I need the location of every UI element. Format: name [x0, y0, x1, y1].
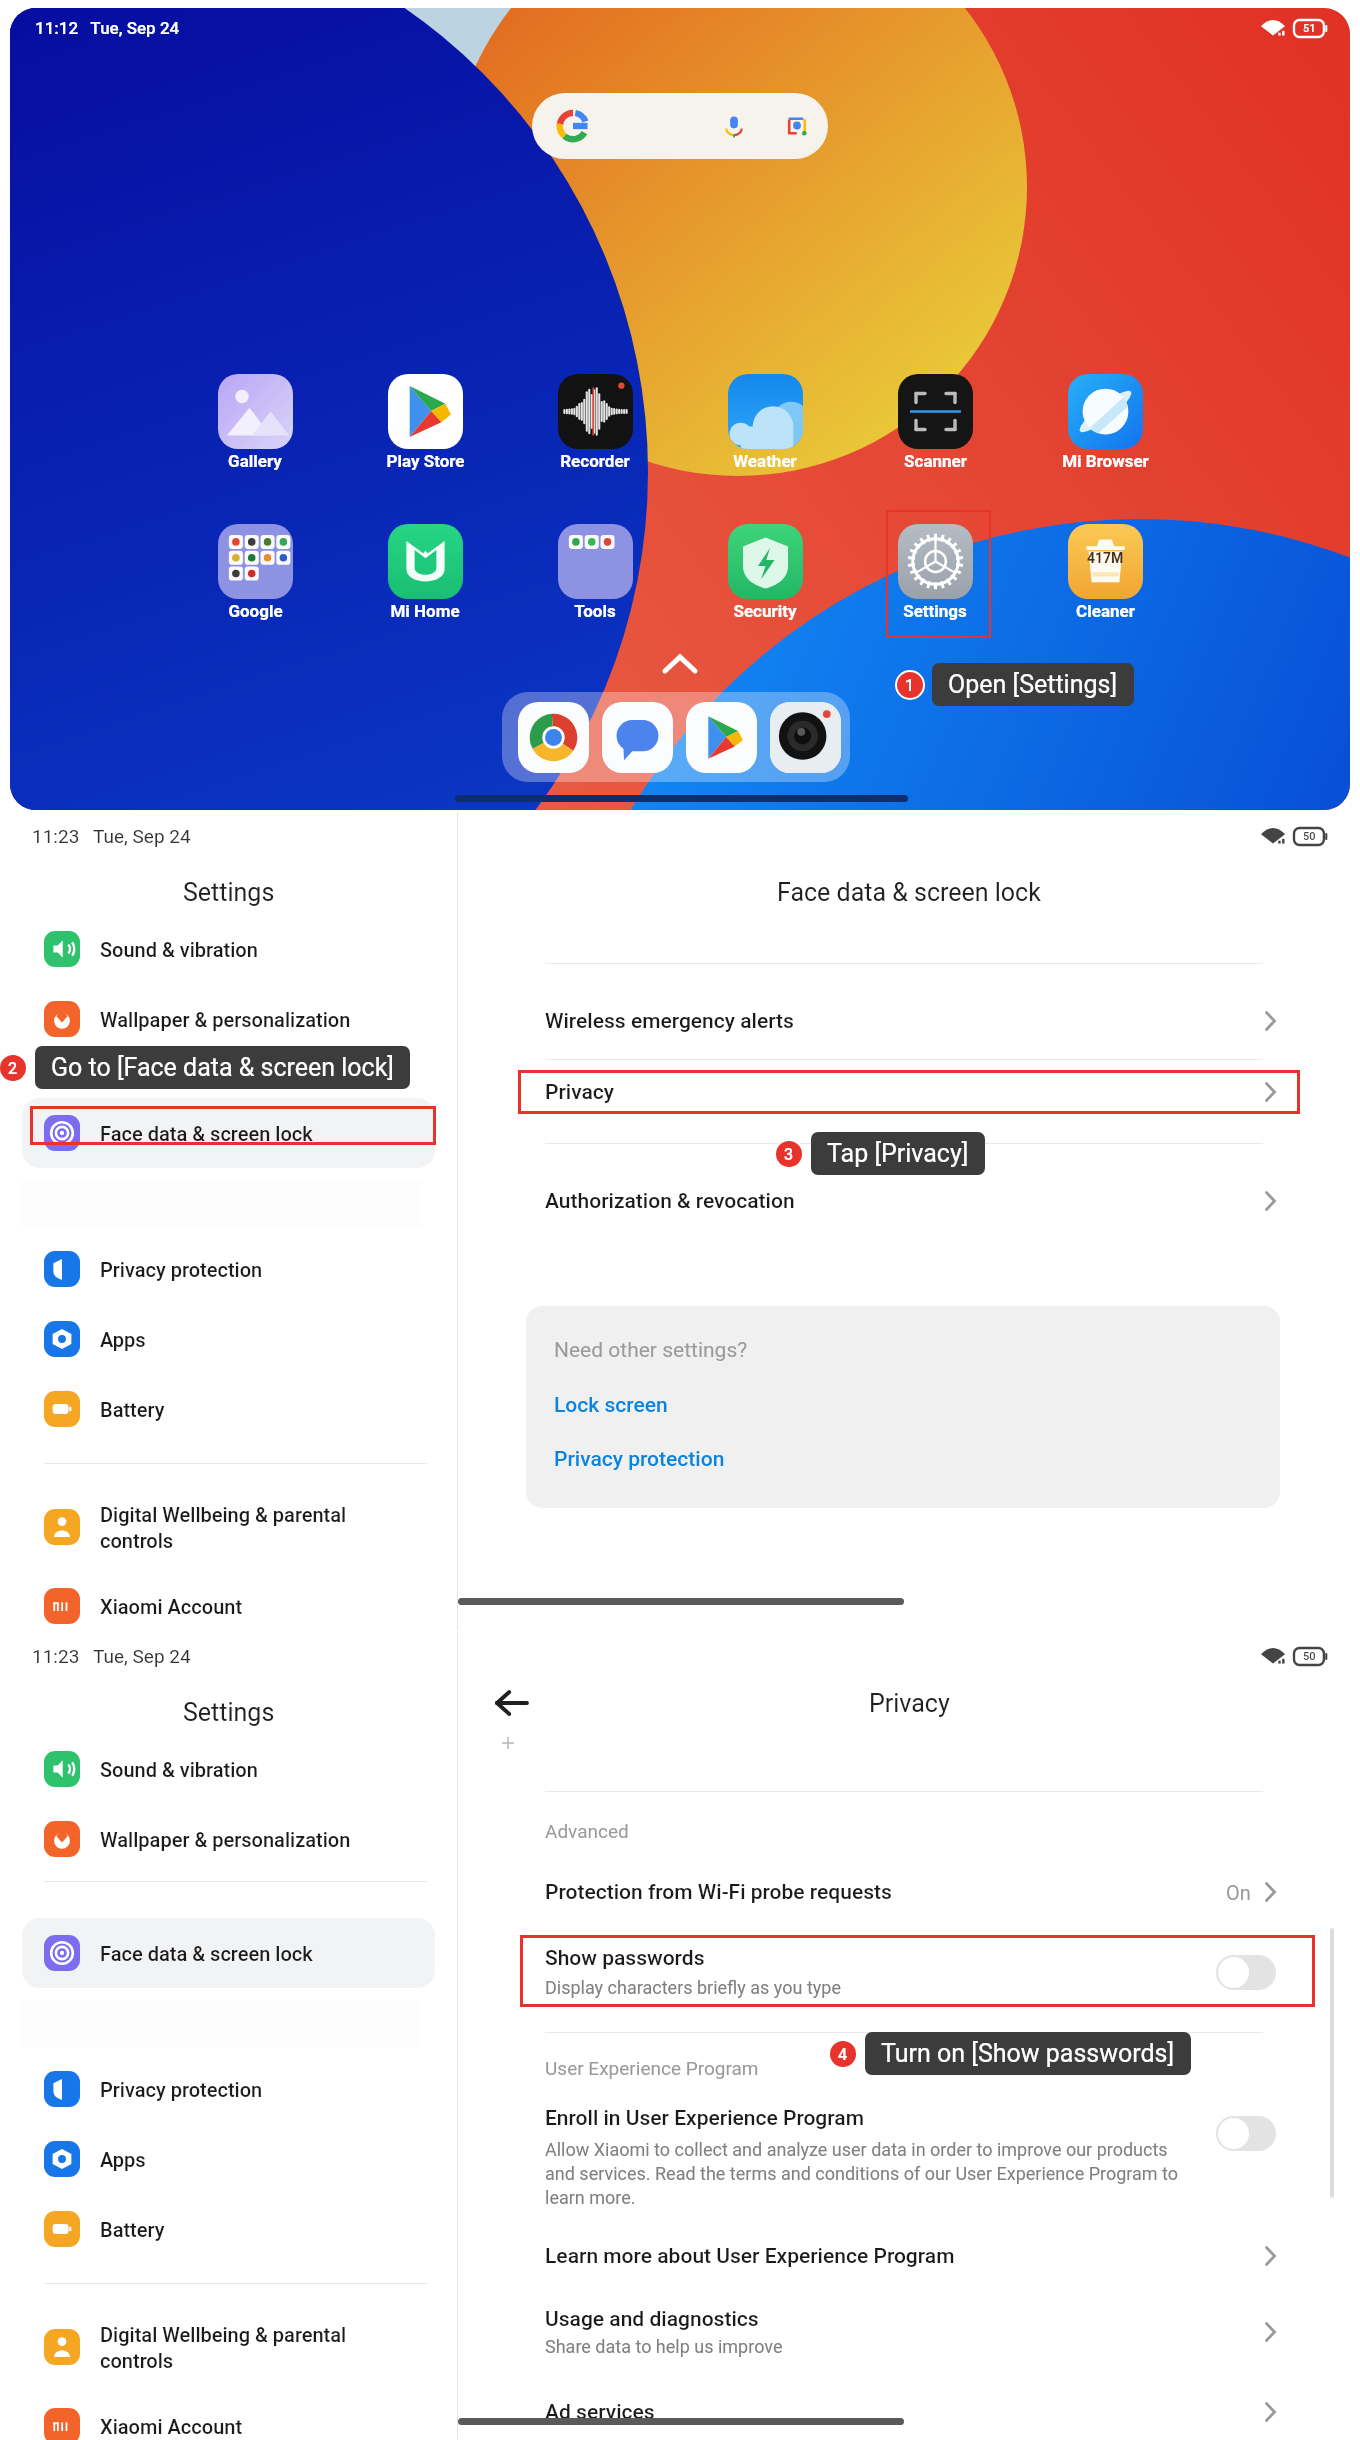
- button[interactable]: Usage and diagnostics: [545, 2297, 1276, 2367]
- staticText: Mi Home: [390, 601, 460, 621]
- button[interactable]: Privacy protection: [554, 1447, 725, 1472]
- staticText: Protection from Wi-Fi probe requests: [545, 1880, 892, 1905]
- staticText: Face data & screen lock: [100, 1942, 313, 1965]
- button[interactable]: Protection from Wi-Fi probe requests: [545, 1857, 1276, 1927]
- button[interactable]: 417M: [1045, 524, 1165, 621]
- staticText: Digital Wellbeing & parental controls: [100, 1503, 347, 1552]
- button[interactable]: Face data & screen lock: [22, 1918, 435, 1988]
- staticText: Wallpaper & personalization: [100, 1828, 351, 1851]
- button[interactable]: Battery: [44, 1374, 457, 1444]
- button[interactable]: Apps: [44, 1304, 457, 1374]
- staticText: On: [1226, 1881, 1251, 1904]
- staticText: 11:23 Tue, Sep 24: [32, 1645, 191, 1667]
- button[interactable]: chrome: [518, 702, 589, 773]
- button[interactable]: Toggle: [1216, 1955, 1276, 1990]
- button[interactable]: Sound & vibration: [44, 1734, 457, 1804]
- staticText: Digital Wellbeing & parental controls: [100, 2323, 347, 2372]
- staticText: Cleaner: [1076, 601, 1135, 621]
- staticText: Google: [228, 601, 283, 621]
- staticText: Sound & vibration: [100, 938, 258, 961]
- staticText: Play Store: [386, 451, 465, 471]
- staticText: Privacy protection: [100, 2078, 263, 2101]
- staticText: Privacy protection: [100, 1258, 263, 1281]
- button[interactable]: Learn more about User Experience Program: [545, 2221, 1276, 2291]
- button[interactable]: Wallpaper & personalization: [44, 1804, 457, 1874]
- button[interactable]: Privacy protection: [44, 1234, 457, 1304]
- staticText: Face data & screen lock: [777, 878, 1041, 907]
- button[interactable]: Digital Wellbeing & parental controls: [44, 1492, 457, 1562]
- staticText: Settings: [183, 1698, 275, 1727]
- staticText: Recorder: [560, 451, 630, 471]
- button[interactable]: Google: [195, 524, 315, 621]
- button[interactable]: Security: [705, 524, 825, 621]
- button[interactable]: Enroll in User Experience Program: [545, 2106, 1276, 2208]
- staticText: Usage and diagnostics: [545, 2307, 759, 2332]
- staticText: Need other settings?: [554, 1338, 748, 1363]
- staticText: 11:12 Tue, Sep 24: [35, 18, 180, 38]
- button[interactable]: Battery: [44, 2194, 457, 2264]
- staticText: Wallpaper & personalization: [100, 1008, 351, 1031]
- staticText: Sound & vibration: [100, 1758, 258, 1781]
- button[interactable]: Gallery: [195, 374, 315, 471]
- button[interactable]: Recorder: [535, 374, 655, 471]
- button[interactable]: Ad services: [545, 2377, 1276, 2440]
- button[interactable]: Toggle: [1216, 2116, 1276, 2151]
- staticText: User Experience Program: [545, 2057, 759, 2079]
- staticText: Turn on [Show passwords]: [881, 2039, 1175, 2068]
- staticText: Security: [733, 601, 797, 621]
- staticText: Share data to help us improve: [545, 2336, 783, 2357]
- button[interactable]: [532, 93, 828, 159]
- staticText: 51: [1303, 22, 1316, 35]
- button[interactable]: Sound & vibration: [44, 914, 457, 984]
- staticText: Show passwords: [545, 1946, 705, 1971]
- staticText: Wireless emergency alerts: [545, 1009, 794, 1034]
- button[interactable]: Weather: [705, 374, 825, 471]
- staticText: Mi Browser: [1062, 451, 1149, 471]
- button[interactable]: Scanner: [875, 374, 995, 471]
- button[interactable]: Mi Browser: [1045, 374, 1165, 471]
- staticText: Ad services: [545, 2400, 655, 2425]
- staticText: Battery: [100, 1398, 165, 1421]
- staticText: Open [Settings]: [948, 670, 1118, 699]
- staticText: Weather: [733, 451, 797, 471]
- button[interactable]: Xiaomi Account: [44, 1571, 457, 1641]
- staticText: Allow Xiaomi to collect and analyze user…: [545, 2139, 1193, 2208]
- button[interactable]: messages: [602, 702, 673, 773]
- button[interactable]: Tools: [535, 524, 655, 621]
- staticText: Lock screen: [554, 1393, 668, 1418]
- button[interactable]: Xiaomi Account: [44, 2391, 457, 2440]
- button[interactable]: Lock screen: [554, 1393, 668, 1418]
- button[interactable]: Apps: [44, 2124, 457, 2194]
- staticText: Scanner: [904, 451, 967, 471]
- staticText: 417M: [1087, 550, 1124, 566]
- button[interactable]: Show passwords: [545, 1932, 1276, 2012]
- staticText: 50: [1303, 1650, 1316, 1663]
- staticText: 50: [1303, 830, 1316, 843]
- button[interactable]: Settings: [875, 524, 995, 621]
- button[interactable]: camera: [770, 702, 841, 773]
- staticText: 2: [8, 1059, 18, 1078]
- button[interactable]: Wireless emergency alerts: [545, 986, 1276, 1056]
- button[interactable]: gplay: [686, 702, 757, 773]
- staticText: Learn more about User Experience Program: [545, 2244, 955, 2269]
- staticText: 4: [838, 2045, 848, 2064]
- button[interactable]: Mi Home: [365, 524, 485, 621]
- staticText: Xiaomi Account: [100, 2415, 243, 2438]
- staticText: Apps: [100, 1328, 146, 1351]
- staticText: Privacy protection: [554, 1447, 725, 1472]
- button[interactable]: Wallpaper & personalization: [44, 984, 457, 1054]
- staticText: Privacy: [545, 1080, 615, 1105]
- staticText: Face data & screen lock: [100, 1122, 313, 1145]
- button[interactable]: Authorization & revocation: [545, 1166, 1276, 1236]
- button[interactable]: Privacy: [545, 1057, 1276, 1127]
- staticText: Tap [Privacy]: [827, 1139, 969, 1168]
- button[interactable]: Back: [484, 1675, 540, 1731]
- button[interactable]: Play Store: [365, 374, 485, 471]
- staticText: Display characters briefly as you type: [545, 1977, 841, 1998]
- staticText: 3: [784, 1145, 794, 1164]
- button[interactable]: Digital Wellbeing & parental controls: [44, 2312, 457, 2382]
- staticText: 1: [905, 676, 915, 695]
- staticText: Battery: [100, 2218, 165, 2241]
- button[interactable]: Face data & screen lock: [22, 1098, 435, 1168]
- button[interactable]: Privacy protection: [44, 2054, 457, 2124]
